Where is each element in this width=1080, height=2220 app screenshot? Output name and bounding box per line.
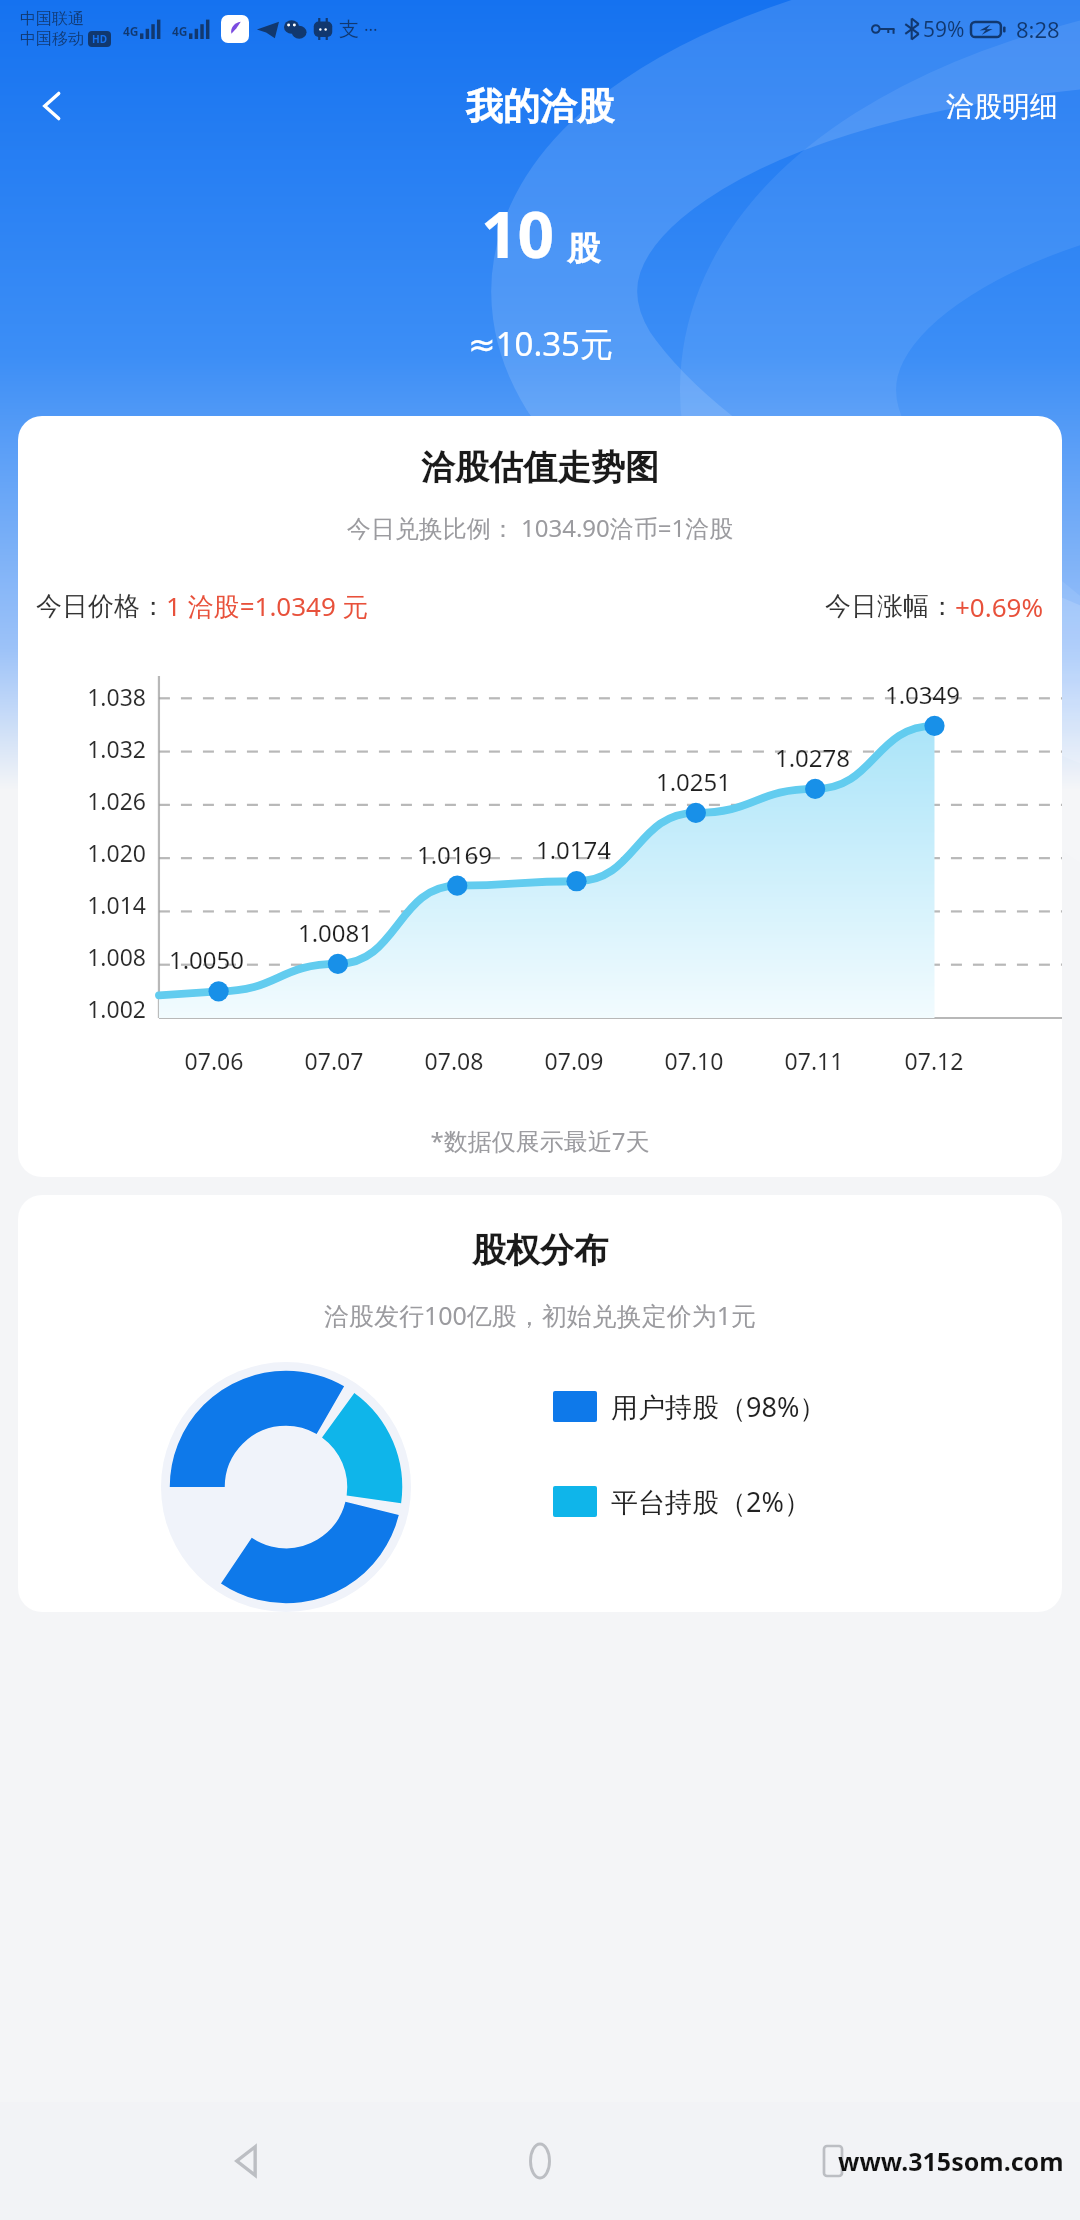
staticText: 1.0081	[276, 916, 395, 949]
button[interactable]: 洽股估值走势图	[18, 416, 1062, 1177]
staticText: 1.014	[18, 889, 146, 920]
staticText: 07.09	[514, 1045, 634, 1076]
staticText: 今日兑换比例： 1034.90洽币=1洽股	[18, 511, 1062, 544]
staticText: 1.038	[18, 681, 146, 712]
button[interactable]: 平台持股（2%）	[553, 1483, 811, 1520]
staticText: 1.020	[18, 837, 146, 868]
staticText: 1.032	[18, 733, 146, 764]
button[interactable]: 洽股明细	[924, 71, 1080, 142]
staticText: 今日涨幅：	[825, 590, 955, 623]
button[interactable]: 用户持股（98%）	[553, 1388, 827, 1425]
staticText: 1.0278	[753, 741, 872, 774]
button[interactable]: Back	[16, 70, 88, 142]
staticText: 1.002	[18, 993, 146, 1024]
staticText: 07.12	[874, 1045, 994, 1076]
button[interactable]: Home	[494, 2115, 586, 2207]
staticText: 平台持股（2%）	[611, 1483, 811, 1520]
staticText: www.315som.com	[838, 2144, 1064, 2178]
staticText: 1.0349	[863, 678, 982, 711]
staticText: 股	[567, 228, 600, 270]
staticText: +0.69%	[955, 589, 1044, 624]
staticText: 1.026	[18, 785, 146, 816]
staticText: *数据仅展示最近7天	[18, 1124, 1062, 1157]
staticText: 中国移动	[20, 29, 84, 49]
staticText: ≈10.35元	[468, 321, 613, 366]
staticText: 1.0169	[395, 838, 514, 871]
staticText: 1 洽股=1.0349 元	[166, 588, 369, 624]
staticText: 股权分布	[18, 1229, 1062, 1272]
staticText: 支	[339, 17, 359, 42]
staticText: 07.11	[754, 1045, 874, 1076]
staticText: 1.0050	[147, 943, 266, 976]
button[interactable]: Back	[201, 2115, 293, 2207]
staticText: 今日价格：	[36, 590, 166, 623]
staticText: 10	[481, 190, 555, 277]
staticText: 07.06	[154, 1045, 274, 1076]
staticText: 1.008	[18, 941, 146, 972]
staticText: 1.0174	[514, 833, 633, 866]
staticText: 中国联通	[20, 9, 84, 29]
staticText: 用户持股（98%）	[611, 1388, 827, 1425]
staticText: 4G	[172, 23, 188, 39]
staticText: 8:28	[1016, 14, 1060, 44]
staticText: 59%	[923, 15, 965, 44]
staticText: 07.08	[394, 1045, 514, 1076]
staticText: HD	[92, 32, 107, 46]
staticText: 07.10	[634, 1045, 754, 1076]
staticText: 洽股估值走势图	[18, 446, 1062, 489]
button[interactable]: 股权分布	[18, 1195, 1062, 1612]
staticText: ···	[364, 18, 378, 41]
staticText: 1.0251	[634, 765, 753, 798]
staticText: 4G	[123, 23, 139, 39]
staticText: 我的洽股	[466, 83, 614, 130]
staticText: 洽股明细	[946, 89, 1058, 124]
staticText: 07.07	[274, 1045, 394, 1076]
staticText: 洽股发行100亿股，初始兑换定价为1元	[18, 1298, 1062, 1332]
button[interactable]: Recent apps	[787, 2115, 879, 2207]
